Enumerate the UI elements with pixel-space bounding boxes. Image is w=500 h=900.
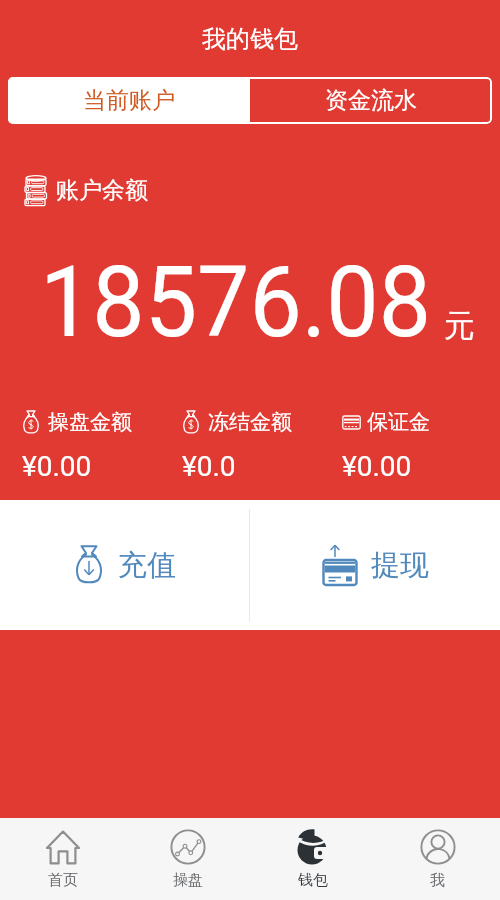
staticText: ¥0.00 <box>342 450 412 483</box>
staticText: 保证金 <box>367 409 430 435</box>
staticText: 资金流水 <box>325 86 417 115</box>
staticText: 冻结金额 <box>208 409 292 435</box>
staticText: 首页 <box>48 871 78 890</box>
button[interactable]: 首页 <box>0 818 125 900</box>
staticText: 操盘 <box>173 871 203 890</box>
staticText: 提现 <box>371 547 429 584</box>
staticText: 元 <box>444 306 475 345</box>
staticText: 充值 <box>118 547 176 584</box>
button[interactable]: 我 <box>375 818 500 900</box>
staticText: ¥0.0 <box>182 450 236 483</box>
staticText: 当前账户 <box>83 86 175 115</box>
staticText: 我的钱包 <box>202 24 298 54</box>
staticText: 操盘金额 <box>48 409 132 435</box>
staticText: ¥0.00 <box>22 450 92 483</box>
button[interactable]: 当前账户 <box>8 77 250 124</box>
button[interactable]: 充值 <box>0 500 249 630</box>
staticText: 18576.08 <box>40 244 431 360</box>
button[interactable]: 操盘 <box>125 818 250 900</box>
staticText: 钱包 <box>298 871 328 890</box>
button[interactable]: 资金流水 <box>250 77 492 124</box>
staticText: 账户余额 <box>56 176 148 205</box>
button[interactable]: 提现 <box>250 500 500 630</box>
staticText: 我 <box>430 871 445 890</box>
button[interactable]: 钱包 <box>250 818 375 900</box>
